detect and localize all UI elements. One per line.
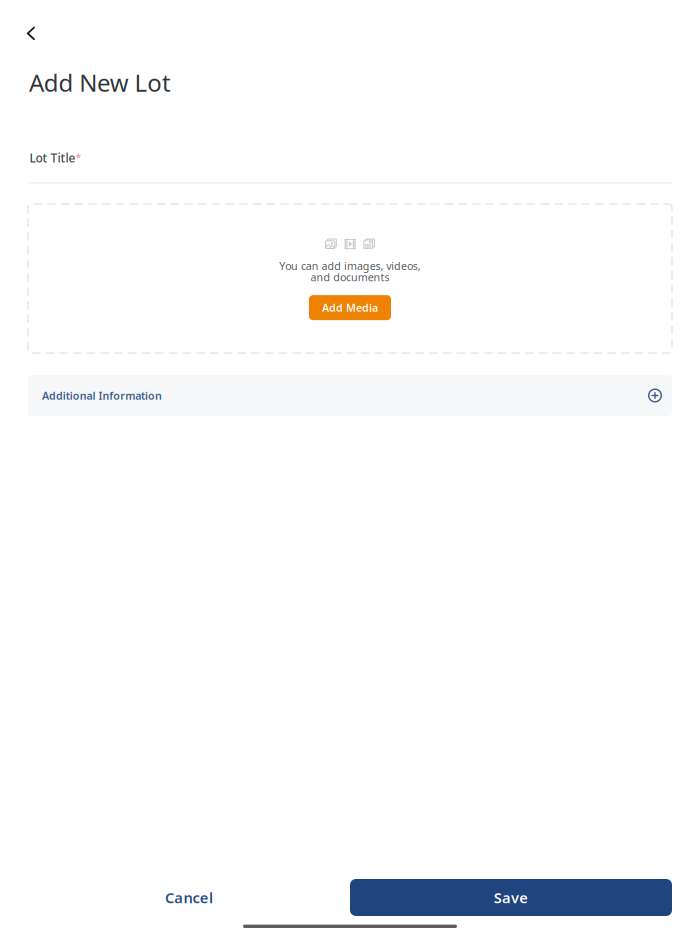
staticText: Additional Information [42,388,162,403]
button[interactable]: Cancel [28,879,350,916]
staticText: You can add images, videos, [279,259,421,273]
button[interactable]: Add Media [309,295,391,320]
staticText: Add Media [322,301,378,315]
staticText: Cancel [165,888,213,907]
staticText: Lot Title [29,150,75,166]
staticText: and documents [311,270,389,284]
button[interactable]: Save [350,879,672,916]
staticText: Add New Lot [29,67,171,98]
staticText: Save [494,888,528,907]
button[interactable]: Additional Information [28,375,672,416]
staticText: * [75,150,81,164]
button[interactable]: Back [11,13,51,53]
